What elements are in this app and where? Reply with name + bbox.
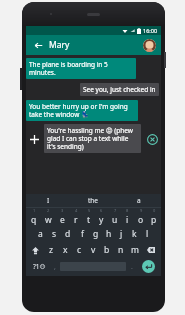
button[interactable]: , bbox=[49, 258, 60, 275]
button[interactable]: 3 bbox=[55, 208, 69, 226]
staticText: q bbox=[31, 214, 37, 226]
button[interactable]: 0 bbox=[147, 208, 160, 226]
staticText: r bbox=[74, 214, 78, 226]
staticText: 1 bbox=[33, 208, 36, 213]
button[interactable]: n bbox=[114, 242, 128, 258]
button[interactable]: c bbox=[72, 242, 86, 258]
staticText: a bbox=[137, 196, 141, 205]
staticText: 8 bbox=[126, 208, 129, 213]
staticText: 16:00 bbox=[143, 27, 158, 34]
staticText: j bbox=[120, 228, 123, 240]
button[interactable]: g bbox=[89, 226, 102, 242]
staticText: o bbox=[138, 214, 144, 226]
staticText: a bbox=[38, 228, 43, 240]
staticText: , bbox=[54, 262, 56, 272]
button[interactable]: 6 bbox=[95, 208, 108, 226]
staticText: Mary bbox=[49, 39, 70, 51]
button[interactable]: You better hurry up or I'm going take th… bbox=[26, 100, 138, 121]
button[interactable]: 8 bbox=[121, 208, 134, 226]
staticText: f bbox=[81, 228, 84, 240]
staticText: m bbox=[131, 244, 139, 256]
button[interactable]: 7 bbox=[108, 208, 121, 226]
staticText: g bbox=[93, 228, 99, 240]
button[interactable]: b bbox=[100, 242, 114, 258]
staticText: 2 bbox=[47, 208, 50, 213]
staticText: x bbox=[63, 244, 68, 256]
button[interactable]: Shift bbox=[27, 242, 44, 258]
button[interactable]: h bbox=[102, 226, 115, 242]
button[interactable]: Contact photo bbox=[143, 39, 156, 52]
button[interactable]: z bbox=[44, 242, 58, 258]
button[interactable]: ?1 bbox=[28, 258, 49, 275]
staticText: 7 bbox=[114, 208, 117, 213]
button[interactable]: Backspace bbox=[142, 242, 160, 258]
staticText: You better hurry up or I'm going take th… bbox=[29, 102, 135, 119]
staticText: n bbox=[118, 244, 124, 256]
button[interactable]: You're hassling me 😡 (phew glad I can st… bbox=[44, 124, 141, 153]
staticText: 5 bbox=[88, 208, 91, 213]
button[interactable]: d bbox=[61, 226, 75, 242]
button[interactable]: 1 bbox=[27, 208, 41, 226]
button[interactable]: The plane is boarding in 5 minutes. bbox=[26, 58, 136, 79]
staticText: 0 bbox=[153, 208, 156, 213]
button[interactable]: 4 bbox=[69, 208, 82, 226]
staticText: See you, just checked in bbox=[83, 85, 156, 94]
staticText: ?1 bbox=[33, 262, 40, 271]
staticText: k bbox=[132, 228, 137, 240]
staticText: The plane is boarding in 5 minutes. bbox=[29, 60, 133, 77]
staticText: i bbox=[126, 214, 129, 226]
button[interactable]: l bbox=[141, 226, 154, 242]
staticText: 6 bbox=[100, 208, 103, 213]
staticText: p bbox=[151, 214, 157, 226]
staticText: h bbox=[106, 228, 112, 240]
button[interactable]: 5 bbox=[82, 208, 95, 226]
button[interactable]: x bbox=[58, 242, 72, 258]
staticText: e bbox=[60, 214, 65, 226]
staticText: 3 bbox=[61, 208, 64, 213]
button[interactable]: v bbox=[86, 242, 100, 258]
button[interactable]: k bbox=[128, 226, 141, 242]
staticText: t bbox=[87, 214, 91, 226]
staticText: I bbox=[47, 196, 50, 205]
staticText: l bbox=[146, 228, 149, 240]
button[interactable]: a bbox=[33, 226, 47, 242]
button[interactable]: Back bbox=[31, 38, 45, 52]
staticText: 9 bbox=[140, 208, 143, 213]
staticText: v bbox=[91, 244, 96, 256]
staticText: 4 bbox=[75, 208, 78, 213]
button[interactable]: Enter bbox=[142, 260, 155, 273]
staticText: z bbox=[49, 244, 53, 256]
button[interactable]: I bbox=[26, 194, 71, 207]
staticText: d bbox=[65, 228, 71, 240]
button[interactable]: m bbox=[128, 242, 142, 258]
staticText: s bbox=[52, 228, 57, 240]
button[interactable]: a bbox=[116, 194, 161, 207]
button[interactable]: j bbox=[115, 226, 128, 242]
button[interactable]: f bbox=[75, 226, 89, 242]
button[interactable]: 2 bbox=[41, 208, 55, 226]
button[interactable]: See you, just checked in bbox=[80, 83, 159, 96]
staticText: You're hassling me 😡 (phew glad I can st… bbox=[47, 126, 138, 151]
button[interactable]: 9 bbox=[134, 208, 147, 226]
staticText: c bbox=[77, 244, 82, 256]
button[interactable]: Cancel sending bbox=[143, 130, 161, 148]
button[interactable]: the bbox=[71, 194, 116, 207]
staticText: u bbox=[112, 214, 118, 226]
staticText: the bbox=[88, 196, 99, 205]
button[interactable]: Attach bbox=[26, 131, 42, 147]
button[interactable]: s bbox=[47, 226, 61, 242]
staticText: y bbox=[99, 214, 104, 226]
staticText: w bbox=[45, 214, 52, 226]
staticText: . bbox=[131, 262, 133, 272]
staticText: b bbox=[104, 244, 110, 256]
